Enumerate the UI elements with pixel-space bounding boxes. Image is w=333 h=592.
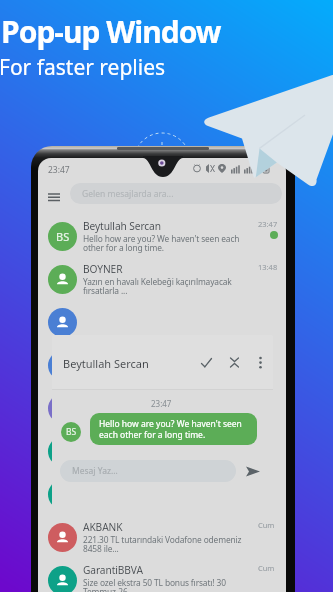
button[interactable]: Mesaj Yaz... xyxy=(60,460,236,482)
button[interactable] xyxy=(38,430,286,473)
button[interactable]: More options xyxy=(249,351,271,373)
button[interactable] xyxy=(38,301,286,344)
staticText: 13:48 xyxy=(258,262,278,272)
button[interactable]: Menu xyxy=(42,185,66,209)
staticText: Beytullah Sercan xyxy=(83,219,161,233)
staticText: Pop-up Window xyxy=(1,11,221,52)
button[interactable]: Collapse xyxy=(223,351,245,373)
staticText: 23:47 xyxy=(258,219,278,229)
staticText: Size ozel ekstra 50 TL bonus fırsatı! 30… xyxy=(83,577,259,592)
button[interactable] xyxy=(38,344,286,387)
staticText: Hello how are you? We haven't seen each … xyxy=(83,233,259,254)
staticText: 23:47 xyxy=(48,164,70,176)
staticText: AKBANK xyxy=(83,520,123,534)
staticText: BS xyxy=(66,426,77,438)
staticText: Cum xyxy=(258,563,275,573)
staticText: Gelen mesajlarda ara... xyxy=(82,188,174,200)
staticText: GarantiBBVA xyxy=(83,563,143,577)
button[interactable] xyxy=(38,473,286,516)
button[interactable]: AKBANK xyxy=(38,516,286,559)
button[interactable]: Mark read xyxy=(195,351,217,373)
staticText: Mesaj Yaz... xyxy=(72,465,118,477)
staticText: Hello how are you? We haven't seen each … xyxy=(99,418,242,440)
staticText: Cum xyxy=(258,520,275,530)
button[interactable]: BOYNER xyxy=(38,258,286,301)
staticText: Yazın en havalı Kelebeği kaçırılmayacak … xyxy=(83,276,259,297)
button[interactable]: GarantiBBVA xyxy=(38,559,286,592)
staticText: For faster replies xyxy=(0,53,166,82)
button[interactable]: Gelen mesajlarda ara... xyxy=(70,183,282,204)
staticText: 221.30 TL tutarındaki Vodafone odemeniz … xyxy=(83,534,259,555)
button[interactable]: BS xyxy=(38,215,286,258)
staticText: Beytullah Sercan xyxy=(63,356,149,371)
button[interactable]: Send xyxy=(241,460,265,482)
button[interactable] xyxy=(38,387,286,430)
staticText: BOYNER xyxy=(83,262,123,276)
staticText: 23:47 xyxy=(151,398,172,409)
staticText: BS xyxy=(56,229,70,244)
